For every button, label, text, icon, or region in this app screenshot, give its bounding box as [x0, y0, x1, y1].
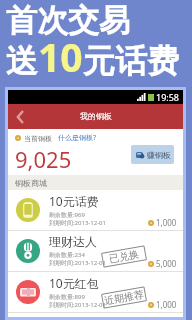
staticText: 10: [38, 30, 83, 83]
staticText: 10元话费: [49, 193, 99, 209]
staticText: 剩余数量:969: [49, 211, 85, 219]
staticText: 剩余数量:899: [49, 293, 85, 301]
staticText: 剩余数量:234: [49, 251, 85, 259]
staticText: 19:58: [156, 91, 180, 103]
staticText: 到期时间:2013-12-01: [49, 301, 106, 309]
staticText: 我的铜板: [80, 111, 112, 121]
button[interactable]: 理财达人: [8, 231, 183, 272]
button[interactable]: 赚铜板: [131, 145, 174, 164]
staticText: 当前铜板: [24, 134, 52, 143]
staticText: 1,000: [156, 299, 177, 310]
staticText: 赚铜板: [147, 150, 171, 160]
staticText: 10元红包: [49, 275, 99, 291]
staticText: 到期时间:2013-12-01: [49, 219, 106, 227]
staticText: 元话费: [83, 41, 179, 81]
staticText: 理财达人: [49, 234, 97, 249]
button[interactable]: 10元红包: [8, 272, 183, 313]
button[interactable]: Back: [8, 105, 32, 129]
staticText: 已兑换: [108, 247, 140, 265]
button[interactable]: 什么是铜板?: [58, 133, 97, 143]
staticText: 5,000: [156, 258, 177, 269]
staticText: 铜板商城: [15, 178, 47, 188]
staticText: 到期时间:2013-12-01: [49, 259, 106, 267]
staticText: 首次交易: [6, 1, 130, 40]
staticText: 近期推荐: [103, 288, 145, 307]
button[interactable]: 10元话费: [8, 190, 183, 231]
staticText: 送: [6, 41, 38, 81]
staticText: 1,000: [156, 217, 177, 228]
staticText: 9,025: [15, 144, 72, 174]
